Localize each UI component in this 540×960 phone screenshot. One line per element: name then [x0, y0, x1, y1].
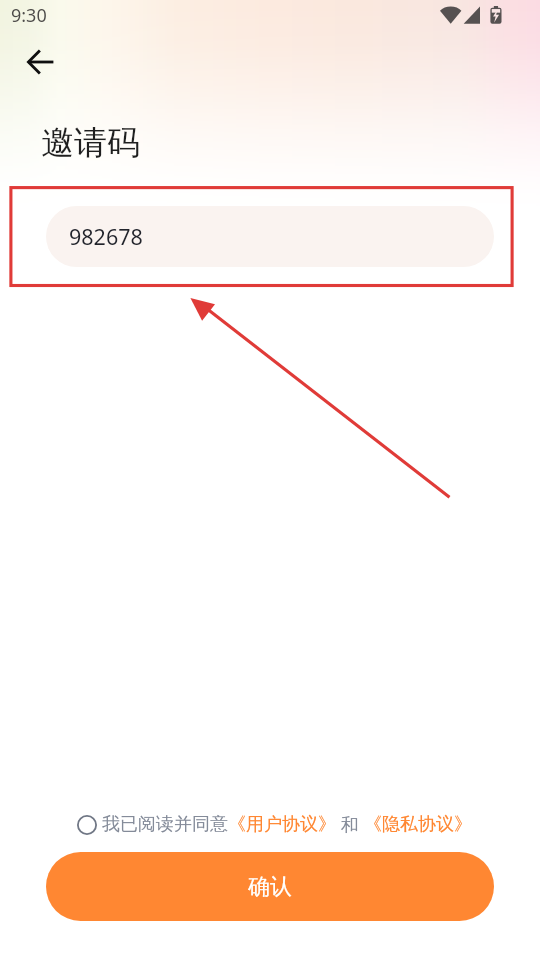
- button[interactable]: 《用户协议》: [228, 813, 336, 836]
- staticText: 和: [336, 812, 364, 837]
- button[interactable]: Agree to terms: [77, 815, 97, 835]
- button[interactable]: Back: [15, 40, 65, 84]
- staticText: 《用户协议》: [228, 813, 336, 836]
- staticText: 9:30: [11, 3, 47, 28]
- staticText: 确认: [248, 873, 292, 901]
- staticText: 我已阅读并同意: [102, 813, 228, 836]
- button[interactable]: 982678: [46, 206, 494, 267]
- button[interactable]: 确认: [46, 852, 494, 921]
- staticText: 982678: [69, 222, 143, 251]
- staticText: 《隐私协议》: [364, 813, 472, 836]
- staticText: 邀请码: [41, 122, 140, 164]
- button[interactable]: 《隐私协议》: [364, 813, 472, 836]
